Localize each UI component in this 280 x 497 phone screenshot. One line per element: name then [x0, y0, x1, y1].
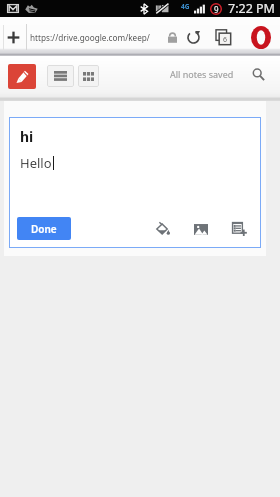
staticText: 9	[214, 4, 219, 15]
button[interactable]: Change colour	[154, 220, 172, 238]
button[interactable]: Add image	[192, 220, 210, 238]
staticText: All notes saved	[170, 68, 234, 80]
staticText: https://drive.google.com/keep/	[30, 32, 157, 43]
staticText: hi	[20, 127, 34, 146]
staticText: 7:22 PM	[228, 0, 275, 17]
button[interactable]: Tabs	[213, 27, 233, 47]
staticText: Hello	[20, 154, 52, 172]
button[interactable]: Grid view	[78, 65, 99, 87]
button[interactable]: Reload	[185, 29, 201, 45]
button[interactable]: Done	[17, 217, 71, 240]
button[interactable]: New tab	[0, 20, 26, 54]
staticText: 6	[223, 35, 228, 45]
button[interactable]: New list	[230, 220, 248, 238]
staticText: Done	[31, 222, 57, 236]
button[interactable]: List view	[47, 65, 74, 87]
staticText: 4G	[181, 2, 190, 11]
button[interactable]: Search	[246, 62, 270, 86]
button[interactable]: New note	[8, 64, 36, 89]
button[interactable]: Opera menu	[249, 25, 273, 49]
